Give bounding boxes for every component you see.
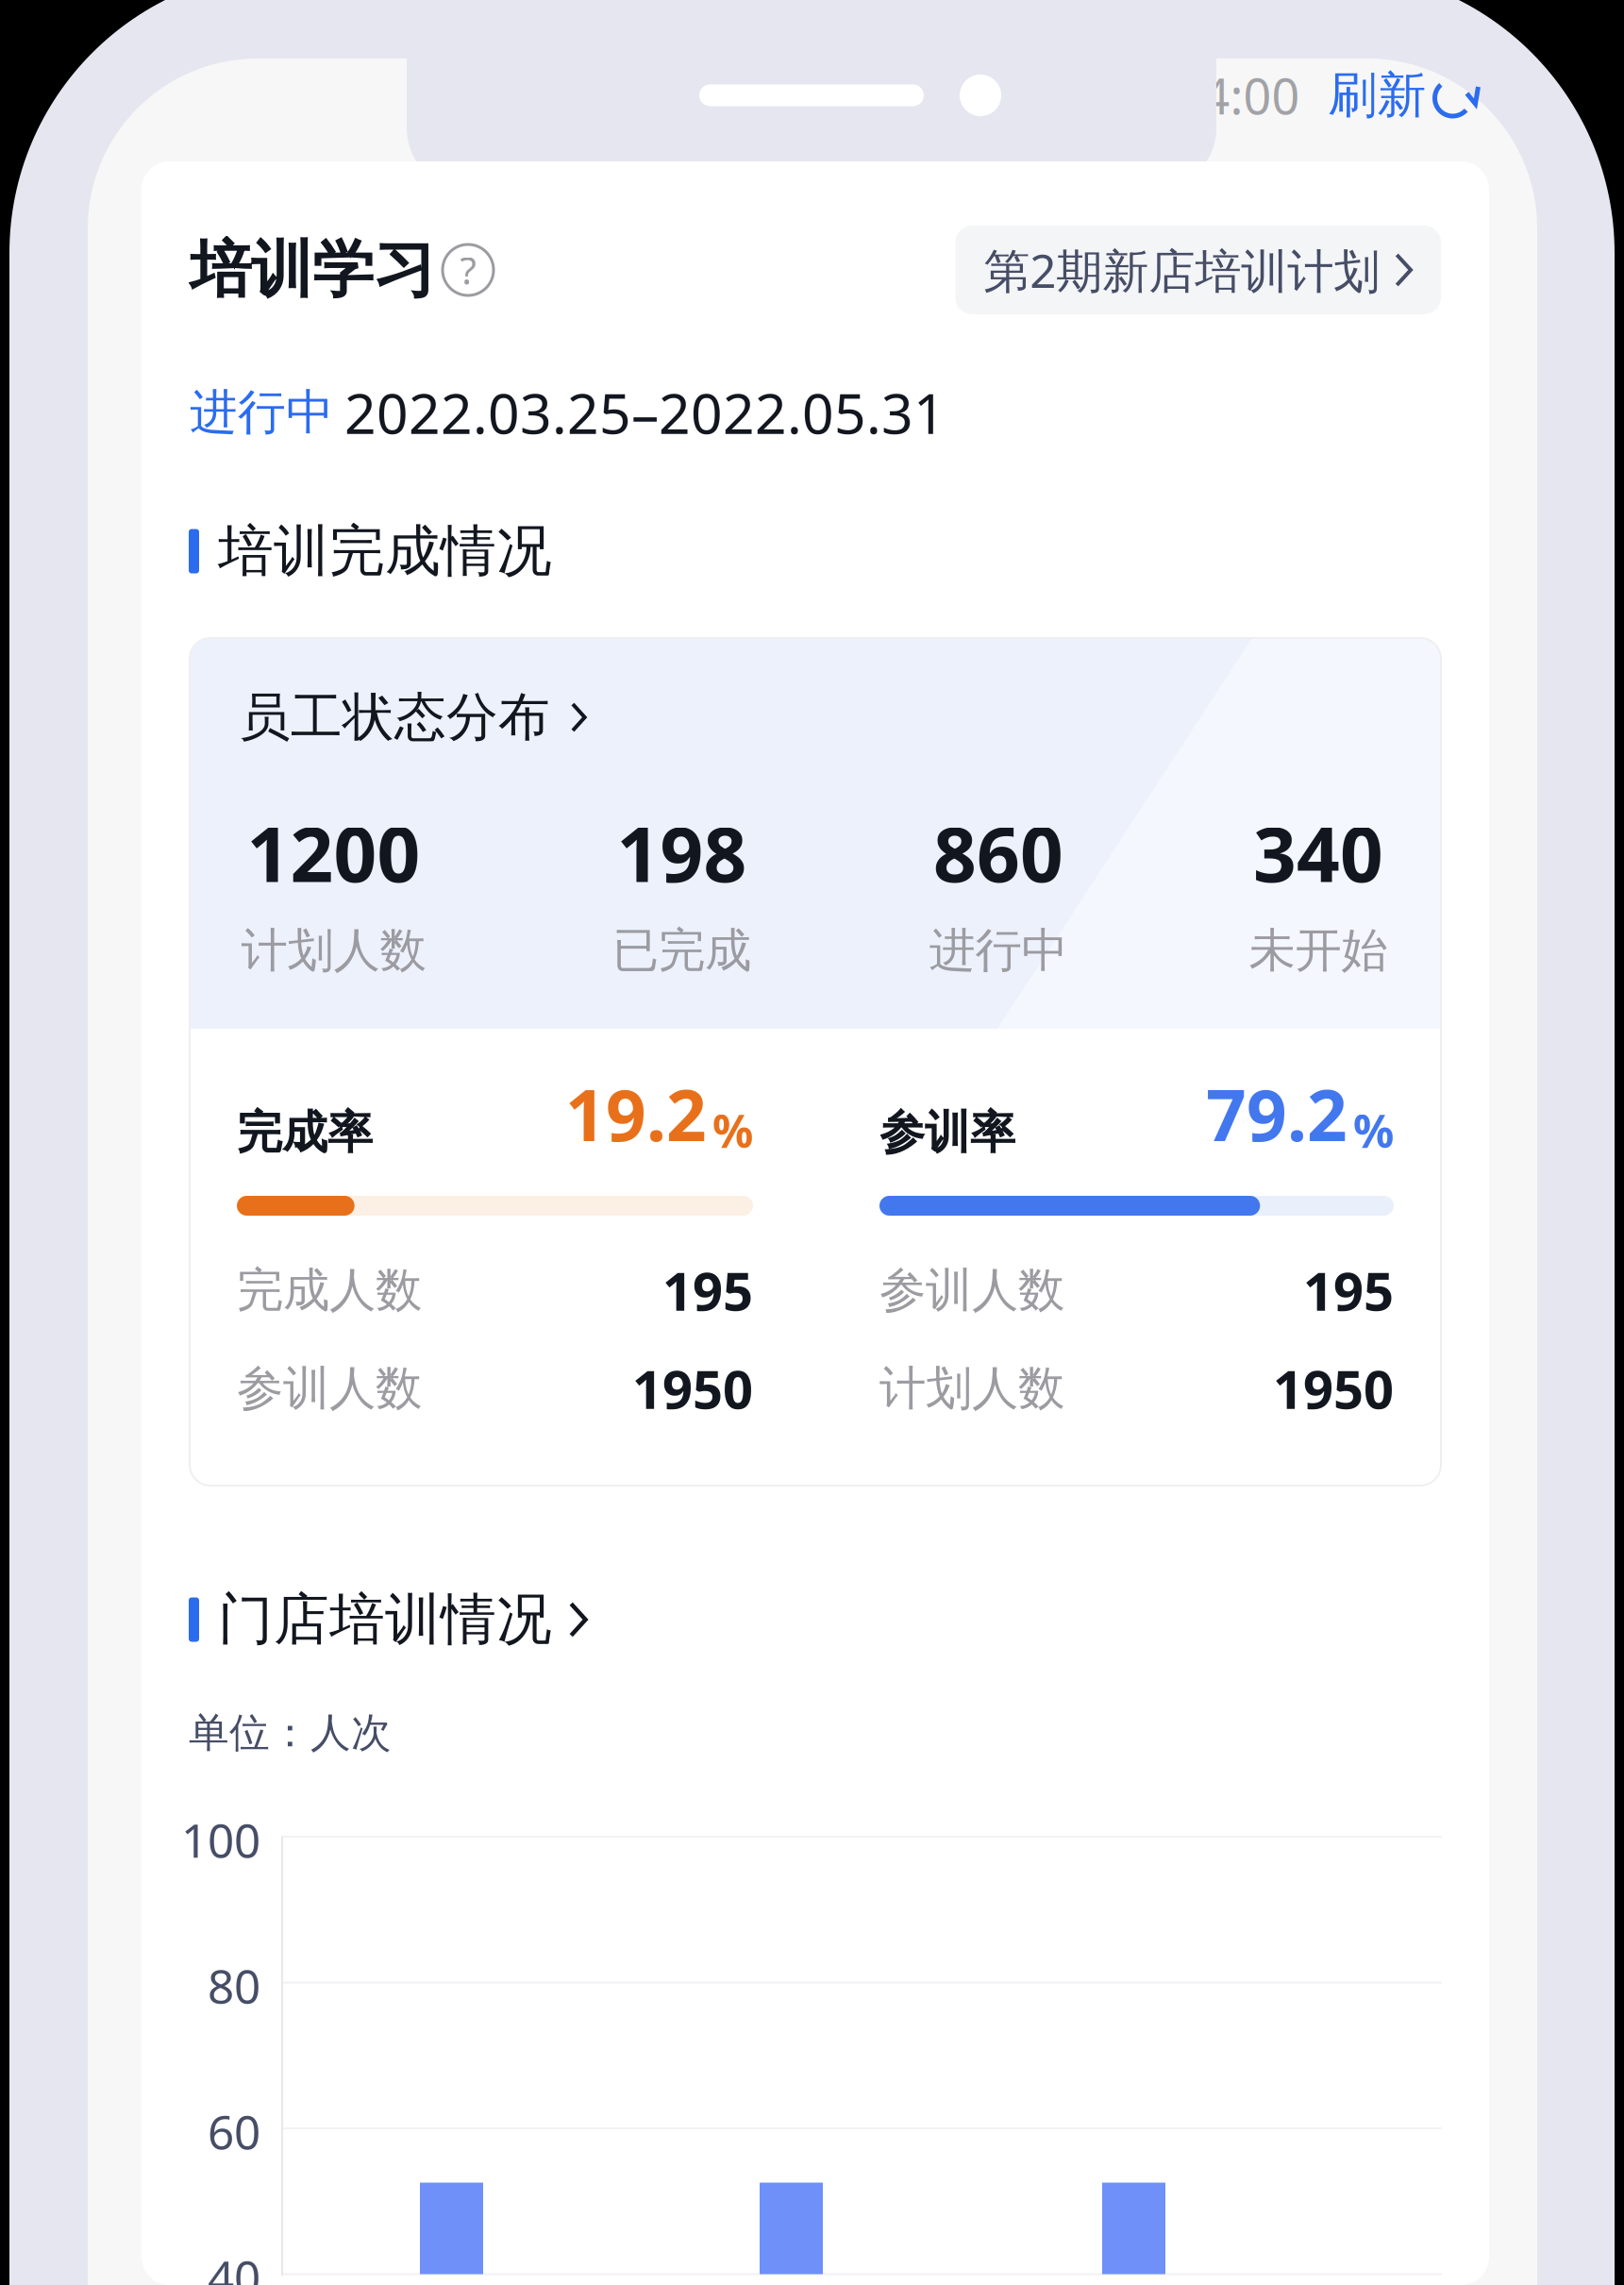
staticText: 参训人数	[237, 1360, 422, 1417]
staticText: 单位：人次	[189, 1708, 392, 1758]
staticText: 1200	[247, 803, 420, 903]
staticText: 79.2	[1206, 1067, 1348, 1161]
staticText: 198	[617, 803, 747, 903]
button[interactable]: 刷新	[1328, 67, 1481, 124]
staticText: 门店培训情况	[218, 1586, 552, 1654]
staticText: 80	[208, 1954, 260, 2016]
staticText: 1950	[1273, 1353, 1394, 1423]
staticText: 2022.03.25–2022.05.31	[344, 376, 946, 449]
staticText: 完成人数	[237, 1262, 422, 1319]
staticText: 1950	[632, 1353, 753, 1423]
staticText: 培训完成情况	[218, 517, 552, 585]
staticText: %	[1353, 1100, 1394, 1160]
button[interactable]: 员工状态分布	[239, 692, 587, 743]
staticText: 进行中	[929, 922, 1068, 979]
staticText: 4:00	[1202, 63, 1300, 128]
staticText: 刷新	[1328, 65, 1426, 126]
button[interactable]: 帮助	[443, 244, 494, 295]
staticText: %	[712, 1100, 753, 1160]
staticText: 第2期新店培训计划	[984, 239, 1380, 301]
staticText: 60	[208, 2100, 260, 2162]
button[interactable]: 第2期新店培训计划	[955, 226, 1441, 314]
staticText: 40	[208, 2246, 260, 2285]
staticText: 进行中	[190, 383, 334, 442]
staticText: 计划人数	[879, 1360, 1064, 1417]
staticText: 860	[933, 803, 1063, 903]
staticText: 19.2	[565, 1067, 707, 1161]
staticText: 195	[1303, 1255, 1394, 1325]
staticText: 已完成	[612, 922, 751, 979]
staticText: 计划人数	[241, 922, 426, 979]
staticText: 参训率	[879, 1105, 1015, 1161]
staticText: 员工状态分布	[239, 686, 550, 749]
staticText: 195	[662, 1255, 753, 1325]
staticText: 340	[1253, 803, 1383, 903]
staticText: 培训学习	[190, 232, 435, 308]
staticText: 未开始	[1249, 922, 1388, 979]
staticText: 参训人数	[879, 1262, 1064, 1319]
staticText: 完成率	[237, 1105, 373, 1161]
staticText: ?	[460, 245, 476, 295]
staticText: 100	[181, 1809, 260, 1870]
